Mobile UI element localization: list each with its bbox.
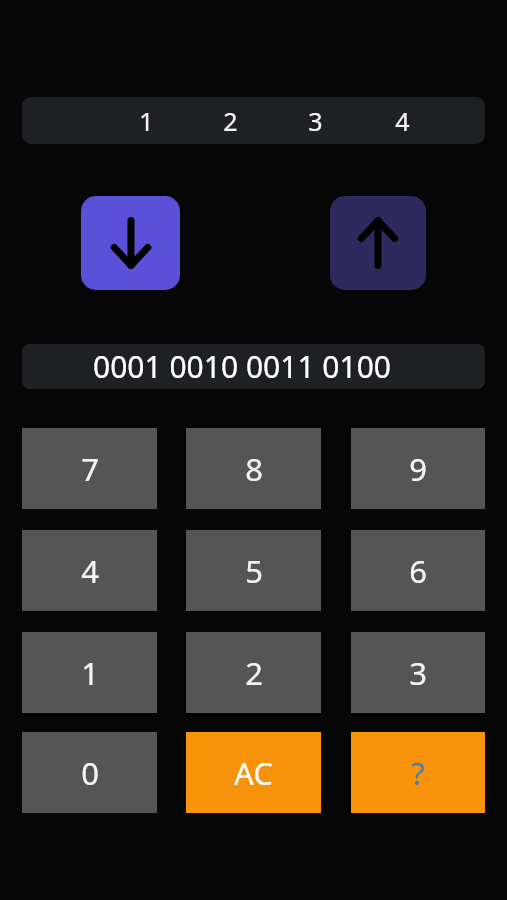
button[interactable]: AC — [186, 732, 321, 813]
staticText: 1 — [81, 652, 99, 694]
staticText: 5 — [245, 550, 263, 592]
button[interactable]: 1 — [124, 97, 168, 144]
button[interactable]: 0001 0010 0011 0100 — [22, 344, 485, 389]
staticText: 8 — [245, 448, 263, 490]
button[interactable]: 1 — [22, 632, 157, 713]
button[interactable]: 3 — [293, 97, 337, 144]
staticText: 7 — [81, 448, 99, 490]
button[interactable]: 2 — [186, 632, 321, 713]
button[interactable]: ? — [351, 732, 485, 813]
staticText: 0001 0010 0011 0100 — [93, 346, 391, 387]
button[interactable]: 4 — [22, 530, 157, 611]
staticText: 9 — [409, 448, 427, 490]
button[interactable]: Shift left — [330, 196, 426, 290]
staticText: 4 — [395, 104, 410, 138]
staticText: 2 — [245, 652, 263, 694]
staticText: 0 — [81, 752, 99, 794]
button[interactable]: 3 — [351, 632, 485, 713]
button[interactable]: Shift right — [81, 196, 180, 290]
button[interactable]: 6 — [351, 530, 485, 611]
button[interactable]: 4 — [380, 97, 424, 144]
button[interactable]: 2 — [208, 97, 252, 144]
button[interactable]: 5 — [186, 530, 321, 611]
staticText: 6 — [409, 550, 427, 592]
button[interactable]: 9 — [351, 428, 485, 509]
button[interactable]: 8 — [186, 428, 321, 509]
staticText: ? — [411, 752, 425, 794]
staticText: 3 — [308, 104, 323, 138]
staticText: 2 — [223, 104, 238, 138]
staticText: 1 — [139, 104, 154, 138]
staticText: AC — [234, 752, 273, 794]
button[interactable]: 7 — [22, 428, 157, 509]
staticText: 3 — [409, 652, 427, 694]
button[interactable]: 0 — [22, 732, 157, 813]
staticText: 4 — [81, 550, 99, 592]
